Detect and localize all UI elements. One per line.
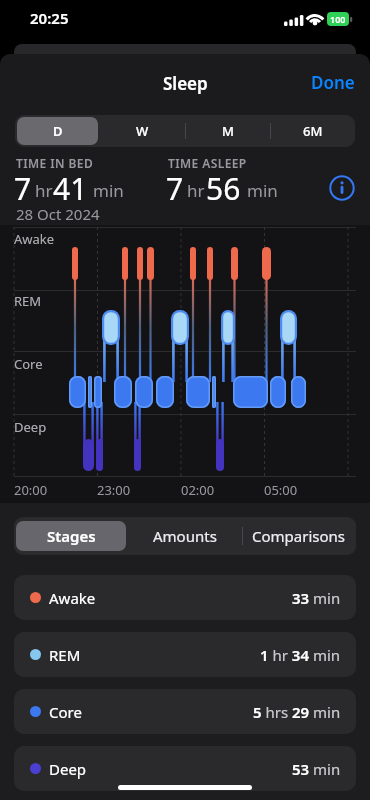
- staticText: 33 min: [292, 588, 341, 608]
- staticText: hr: [187, 179, 205, 202]
- staticText: TIME IN BED: [16, 155, 94, 171]
- button[interactable]: Core: [14, 689, 356, 734]
- staticText: Core: [49, 702, 82, 722]
- staticText: Deep: [49, 759, 87, 779]
- button[interactable]: 6M: [270, 115, 355, 147]
- staticText: 56: [206, 168, 241, 209]
- staticText: 23:00: [97, 481, 131, 499]
- staticText: 100: [330, 13, 346, 25]
- staticText: 5 hrs 29 min: [253, 702, 341, 722]
- staticText: hr: [35, 179, 53, 202]
- staticText: Comparisons: [252, 526, 346, 546]
- staticText: 20:25: [30, 8, 69, 28]
- staticText: W: [136, 122, 149, 140]
- button[interactable]: Stages: [16, 521, 126, 551]
- staticText: min: [247, 179, 278, 202]
- staticText: Deep: [14, 418, 47, 436]
- button[interactable]: Comparisons: [242, 517, 356, 555]
- staticText: TIME ASLEEP: [168, 155, 247, 171]
- staticText: 05:00: [264, 481, 298, 499]
- staticText: Amounts: [153, 526, 217, 546]
- staticText: REM: [49, 645, 81, 665]
- staticText: Done: [311, 71, 355, 94]
- button[interactable]: W: [100, 115, 185, 147]
- staticText: Core: [14, 355, 43, 373]
- staticText: 41: [53, 168, 88, 209]
- button[interactable]: Amounts: [128, 517, 242, 555]
- staticText: 53 min: [292, 759, 341, 779]
- staticText: REM: [14, 292, 42, 310]
- staticText: M: [222, 122, 234, 140]
- staticText: Awake: [49, 588, 96, 608]
- staticText: 6M: [303, 122, 323, 140]
- staticText: 20:00: [14, 481, 48, 499]
- button[interactable]: [329, 175, 355, 201]
- button[interactable]: Awake: [14, 575, 356, 620]
- button[interactable]: D: [17, 117, 98, 145]
- staticText: D: [53, 122, 63, 140]
- button[interactable]: Deep: [14, 746, 356, 791]
- staticText: Stages: [47, 526, 96, 546]
- staticText: 02:00: [181, 481, 215, 499]
- button[interactable]: M: [185, 115, 270, 147]
- button[interactable]: REM: [14, 632, 356, 677]
- staticText: 28 Oct 2024: [16, 204, 100, 224]
- staticText: 7: [14, 168, 32, 209]
- button[interactable]: Done: [305, 67, 360, 97]
- staticText: Sleep: [163, 72, 208, 95]
- staticText: min: [93, 179, 124, 202]
- staticText: 1 hr 34 min: [260, 645, 341, 665]
- staticText: Awake: [14, 230, 55, 248]
- staticText: 7: [166, 168, 184, 209]
